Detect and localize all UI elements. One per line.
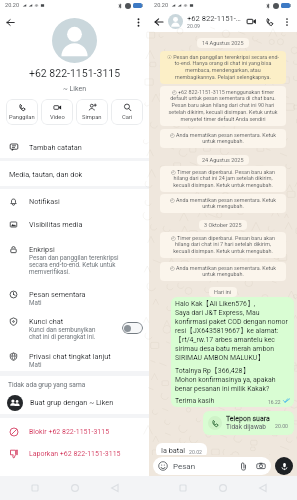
button[interactable]: Home: [68, 481, 82, 495]
staticText: ☉ Pesan dan panggilan terenkripsi secara…: [167, 54, 279, 81]
button[interactable]: Voice call: [265, 17, 275, 27]
button[interactable]: Back: [108, 481, 122, 495]
staticText: ◴ Anda mematikan pesan sementara. Ketuk …: [167, 197, 279, 210]
staticText: ◴ Anda mematikan pesan sementara. Ketuk …: [167, 265, 279, 278]
staticText: 20.02: [189, 449, 203, 455]
staticText: 3 Oktober 2025: [204, 222, 242, 228]
button[interactable]: Cari: [111, 99, 143, 125]
button[interactable]: Panggilan: [6, 99, 38, 125]
button[interactable]: Back: [153, 16, 165, 28]
button[interactable]: Voice message: [275, 457, 293, 475]
staticText: ◴ +62 822-1151-3115 menggunakan timer de…: [167, 89, 279, 123]
staticText: Blokir +62 822-1151-3115: [29, 428, 110, 436]
button[interactable]: Tambah catatan: [0, 136, 149, 158]
staticText: Tidak dijawab: [226, 423, 266, 431]
staticText: 20.20: [154, 2, 169, 9]
staticText: Halo Kak【Ali Liken576】, Saya dari J&T Ex…: [175, 299, 288, 362]
staticText: Pesan sementara: [29, 290, 86, 299]
button[interactable]: Media, tautan, dan dok: [0, 164, 149, 184]
button[interactable]: Enkripsi: [0, 245, 149, 279]
staticText: Hari ini: [214, 289, 232, 295]
button[interactable]: Pesan: [153, 457, 271, 475]
staticText: Kunci dan sembunyikan chat ini di perang…: [29, 326, 96, 340]
staticText: Video: [50, 114, 65, 121]
staticText: ◴ Anda mematikan pesan sementara. Ketuk …: [167, 132, 279, 145]
button[interactable]: ◴ Anda mematikan pesan sementara. Ketuk …: [160, 129, 286, 148]
staticText: 24 Agustus 2025: [202, 157, 244, 163]
button[interactable]: Video call: [246, 16, 257, 27]
staticText: Visibilitas media: [29, 220, 83, 229]
staticText: Simpan: [82, 114, 102, 121]
staticText: Terima kasih: [175, 397, 215, 405]
staticText: Kunci chat: [29, 317, 64, 326]
staticText: Panggilan: [9, 114, 35, 121]
button[interactable]: Privasi chat tingkat lanjut: [0, 352, 149, 372]
staticText: ◴ Timer pesan diperbarui. Pesan baru aka…: [167, 169, 279, 189]
staticText: 20.00: [275, 423, 289, 429]
staticText: 16.22: [268, 399, 281, 405]
button[interactable]: ◴ Timer pesan diperbarui. Pesan baru aka…: [160, 166, 286, 192]
staticText: Enkripsi: [29, 245, 55, 254]
button[interactable]: ◴ +62 822-1151-3115 menggunakan timer de…: [160, 86, 286, 126]
staticText: Ia batal: [161, 446, 185, 455]
staticText: 20.20: [5, 2, 20, 9]
button[interactable]: More options: [282, 17, 292, 27]
staticText: Privasi chat tingkat lanjut: [29, 352, 111, 361]
button[interactable]: Kunci chat: [0, 317, 149, 344]
button[interactable]: Back: [256, 481, 270, 495]
staticText: Media, tautan, dan dok: [9, 170, 83, 179]
button[interactable]: Recents: [28, 481, 42, 495]
staticText: Pesan: [173, 462, 196, 471]
staticText: Pesan dan panggilan terenkripsi secara e…: [29, 254, 119, 275]
staticText: ~ Liken: [63, 85, 87, 93]
staticText: Mati: [29, 299, 42, 306]
staticText: Mati: [29, 361, 42, 368]
button[interactable]: Home: [216, 481, 230, 495]
staticText: Totalnya Rp【366,428】 Mohon konfirmasinya…: [175, 366, 276, 393]
staticText: 14 Agustus 2025: [202, 40, 244, 46]
button[interactable]: Pesan sementara: [0, 290, 149, 310]
button[interactable]: Halo Kak【Ali Liken576】, Saya dari J&T Ex…: [171, 297, 294, 407]
staticText: Cari: [122, 114, 133, 121]
button[interactable]: Notifikasi: [0, 197, 149, 210]
button[interactable]: Simpan: [76, 99, 108, 125]
staticText: Telepon suara: [226, 415, 270, 423]
staticText: Laporkan +62 822-1151-3115: [29, 450, 121, 458]
button[interactable]: Video: [41, 99, 73, 125]
button[interactable]: Visibilitas media: [0, 220, 149, 233]
staticText: Buat grup dengan ~ Liken: [30, 398, 114, 407]
staticText: ◴ Timer pesan diperbarui. Pesan baru aka…: [167, 235, 279, 255]
button[interactable]: More options: [133, 17, 144, 28]
button[interactable]: Recents: [176, 481, 190, 495]
button[interactable]: ◴ Timer pesan diperbarui. Pesan baru aka…: [160, 232, 286, 258]
button[interactable]: ◴ Anda mematikan pesan sementara. Ketuk …: [160, 194, 286, 213]
staticText: Tidak ada grup yang sama: [8, 381, 86, 389]
button[interactable]: ☉ Pesan dan panggilan terenkripsi secara…: [160, 51, 286, 84]
button[interactable]: ◴ Anda mematikan pesan sementara. Ketuk …: [160, 262, 286, 281]
button[interactable]: Laporkan +62 822-1151-3115: [0, 446, 149, 462]
staticText: +62 822-1151-3115: [29, 67, 121, 79]
staticText: Notifikasi: [29, 197, 60, 206]
staticText: +62 822-1151-…: [187, 14, 241, 23]
staticText: Tambah catatan: [29, 143, 82, 152]
button[interactable]: Blokir +62 822-1151-3115: [0, 424, 149, 440]
button[interactable]: Ia batal: [156, 443, 207, 458]
button[interactable]: Buat grup dengan ~ Liken: [0, 394, 149, 411]
button[interactable]: Telepon suara: [203, 411, 294, 435]
button[interactable]: Back: [5, 17, 16, 28]
staticText: 20.09: [187, 23, 201, 29]
